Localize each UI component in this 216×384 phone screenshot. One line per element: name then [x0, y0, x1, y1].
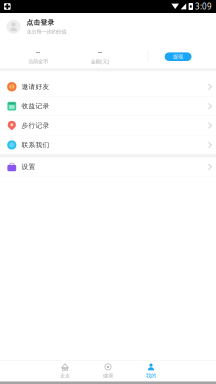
staticText: 当前金币: [28, 58, 48, 65]
button[interactable]: 我的: [129, 360, 172, 381]
button[interactable]: 走走: [43, 360, 86, 381]
button[interactable]: 联系我们: [0, 135, 216, 154]
staticText: 走出每一步的价值: [26, 28, 66, 35]
staticText: 点击登录: [26, 18, 54, 27]
staticText: 走走: [60, 372, 70, 379]
staticText: 收益记录: [22, 102, 50, 110]
staticText: --: [36, 47, 40, 56]
button[interactable]: 提现: [165, 52, 191, 61]
staticText: 步行记录: [22, 121, 50, 130]
staticText: 设置: [22, 163, 36, 171]
staticText: 我的: [146, 372, 156, 379]
staticText: 邀请好友: [22, 83, 50, 91]
button[interactable]: 步行记录: [0, 116, 216, 135]
staticText: 3:09: [195, 1, 212, 12]
button[interactable]: 收益记录: [0, 97, 216, 116]
staticText: 提现: [173, 53, 183, 60]
staticText: --: [98, 47, 102, 56]
button[interactable]: 设置: [0, 157, 216, 176]
staticText: 健康: [103, 372, 113, 379]
button[interactable]: 健康: [86, 360, 129, 381]
staticText: 金额(元): [90, 58, 109, 65]
staticText: 联系我们: [22, 141, 50, 149]
button[interactable]: 邀请好友: [0, 77, 216, 96]
